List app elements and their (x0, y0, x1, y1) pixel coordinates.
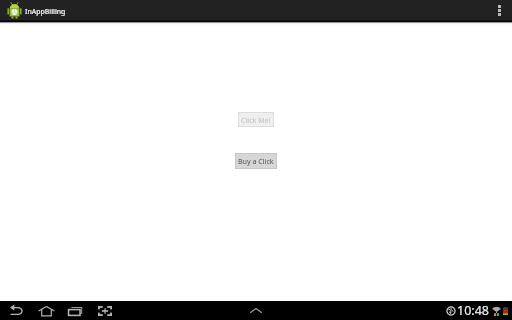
button[interactable]: Buy a Click (235, 153, 277, 169)
button[interactable]: Recent apps (62, 301, 88, 320)
button[interactable]: Click Me! (238, 112, 274, 127)
button[interactable]: Screenshot (92, 301, 118, 320)
button[interactable]: Notifications (243, 301, 269, 320)
staticText: Buy a Click (238, 156, 274, 166)
staticText: InAppBilling (25, 7, 66, 16)
button[interactable]: Home (33, 301, 59, 320)
button[interactable]: More options (486, 0, 510, 20)
button[interactable]: Back (3, 301, 29, 320)
staticText: 10:48 (457, 302, 489, 319)
staticText: Click Me! (241, 115, 271, 125)
